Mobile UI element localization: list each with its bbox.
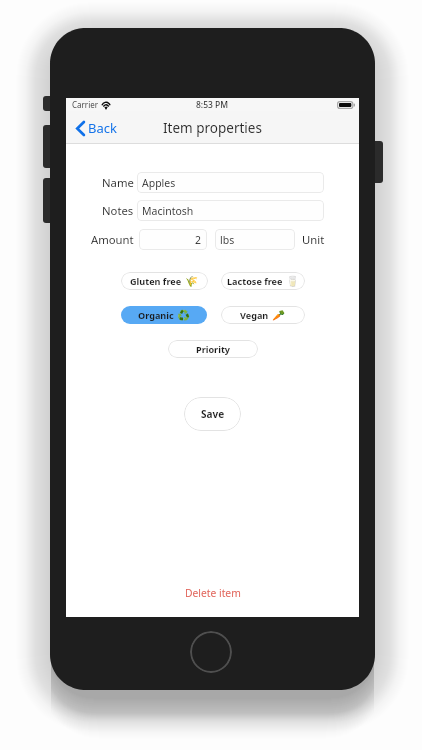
button[interactable]: Macintosh (137, 200, 324, 221)
staticText: Item properties (163, 119, 262, 137)
staticText: Back (88, 119, 117, 137)
button[interactable]: Gluten free (121, 272, 208, 290)
button[interactable]: lbs (215, 229, 295, 250)
staticText: 🥕 (272, 309, 286, 321)
button[interactable]: Save (184, 397, 241, 431)
staticText: 8:53 PM (196, 99, 229, 111)
staticText: Organic (138, 309, 174, 321)
staticText: Lactose free (227, 275, 283, 287)
staticText: Unit (302, 232, 325, 247)
staticText: Macintosh (142, 204, 194, 218)
staticText: Name (102, 175, 134, 190)
button[interactable]: Vegan (221, 306, 305, 324)
staticText: ♻️ (177, 309, 191, 321)
staticText: 2 (195, 233, 202, 247)
staticText: lbs (220, 233, 235, 247)
button[interactable]: 2 (139, 229, 207, 250)
button[interactable]: Back (66, 115, 123, 141)
staticText: 🌾 (185, 275, 199, 287)
staticText: 🥛 (286, 275, 300, 287)
button[interactable]: Organic (121, 306, 207, 324)
staticText: Apples (142, 176, 176, 190)
staticText: Carrier (72, 99, 99, 110)
button[interactable]: Home (190, 631, 232, 673)
button[interactable]: Delete item (181, 582, 245, 604)
button[interactable]: Priority (168, 340, 258, 358)
staticText: Save (201, 407, 225, 421)
staticText: Priority (196, 343, 231, 355)
staticText: Gluten free (130, 275, 182, 287)
button[interactable]: Lactose free (221, 272, 305, 290)
staticText: Notes (102, 203, 134, 218)
staticText: Vegan (240, 309, 269, 321)
staticText: Amount (91, 232, 134, 247)
button[interactable]: Apples (137, 172, 324, 193)
